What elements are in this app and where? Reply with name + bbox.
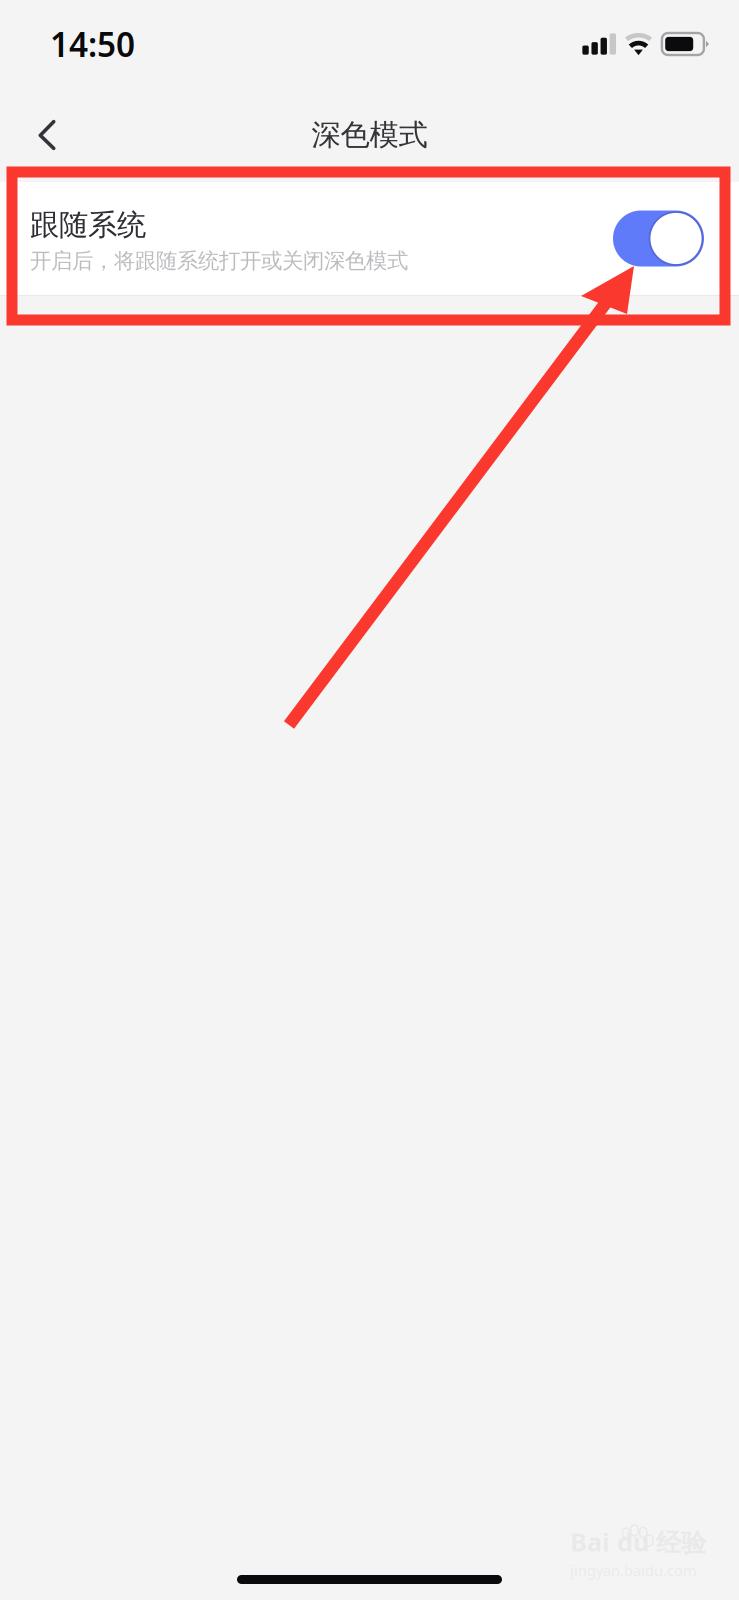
- staticText: Bai du 经验: [570, 1525, 706, 1559]
- staticText: 深色模式: [311, 117, 427, 153]
- button[interactable]: 跟随系统: [0, 182, 739, 295]
- staticText: 跟随系统: [30, 207, 146, 243]
- staticText: jingyan.baidu.com: [570, 1560, 697, 1580]
- staticText: 14:50: [50, 22, 135, 66]
- staticText: 开启后，将跟随系统打开或关闭深色模式: [30, 248, 408, 274]
- button[interactable]: Back: [11, 88, 83, 182]
